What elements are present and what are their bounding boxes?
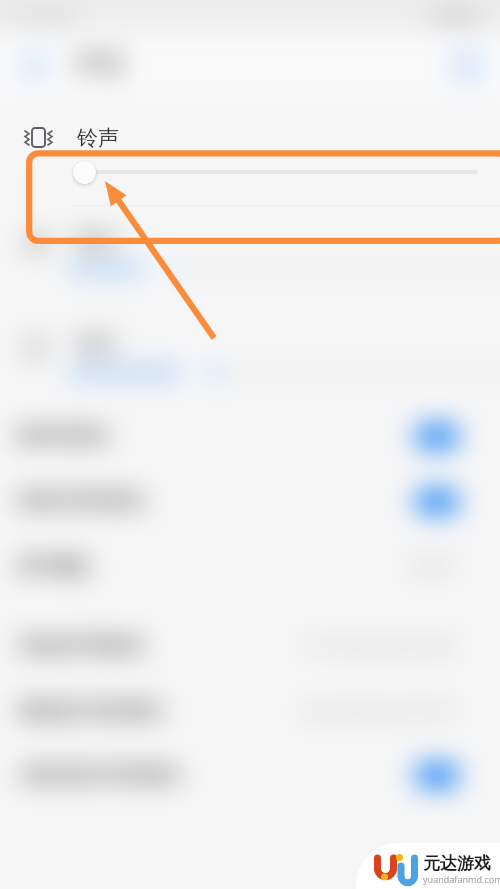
staticText: 闹钟 bbox=[76, 332, 116, 357]
button[interactable]: 拨号键盘 bbox=[0, 534, 500, 599]
button[interactable]: 通知提示音和振动 bbox=[0, 679, 500, 744]
button[interactable]: Ringtone volume bbox=[73, 161, 96, 184]
staticText: 充电时提示音和振动 bbox=[18, 764, 180, 787]
button[interactable]: 响铃时同时振动 bbox=[0, 469, 500, 534]
button[interactable]: 静音时振动 bbox=[0, 404, 500, 469]
button[interactable]: Search bbox=[448, 47, 485, 84]
staticText: 响铃时同时振动 bbox=[18, 490, 144, 513]
staticText: 静音时振动 bbox=[18, 425, 108, 448]
button[interactable]: 充电时提示音和振动 bbox=[0, 743, 500, 808]
staticText: 拨号键盘 bbox=[18, 555, 90, 578]
staticText: 媒体 bbox=[76, 228, 116, 253]
staticText: 元达游戏 bbox=[423, 853, 491, 874]
staticText: 通知提示音和振动 bbox=[18, 700, 162, 723]
button[interactable]: 来电铃声和振动 bbox=[0, 614, 500, 679]
staticText: 来电铃声和振动 bbox=[18, 635, 144, 658]
staticText: 声音 bbox=[74, 48, 126, 81]
staticText: 铃声 bbox=[77, 125, 119, 151]
staticText: yuandafanmd.com bbox=[423, 873, 500, 885]
